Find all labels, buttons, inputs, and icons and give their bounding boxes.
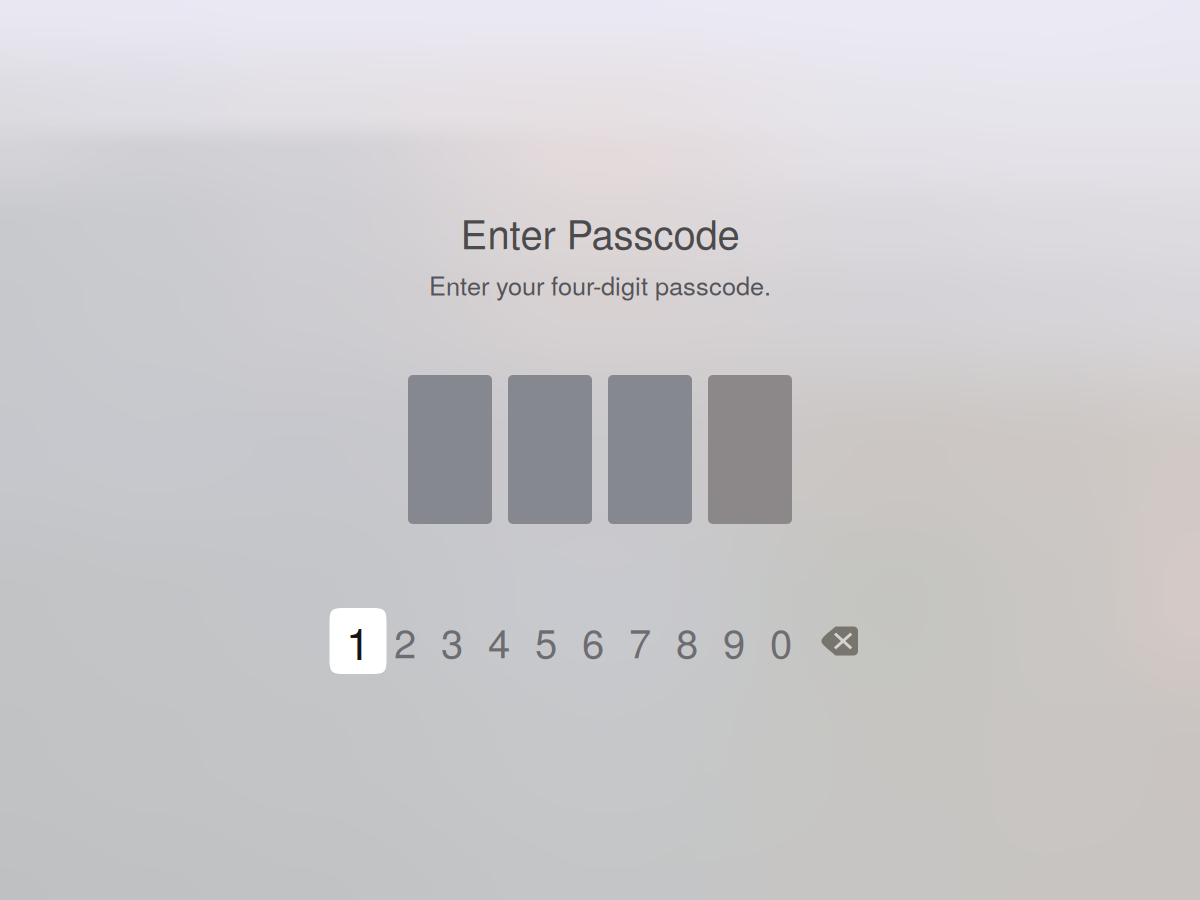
staticText: 8 bbox=[676, 612, 698, 670]
button[interactable]: Delete bbox=[804, 608, 873, 674]
button[interactable]: 1 bbox=[334, 608, 381, 674]
staticText: 7 bbox=[629, 612, 651, 670]
button[interactable]: 2 bbox=[381, 608, 428, 674]
staticText: 2 bbox=[394, 612, 416, 670]
button[interactable]: 8 bbox=[663, 608, 710, 674]
staticText: Enter your four-digit passcode. bbox=[429, 266, 771, 303]
staticText: 3 bbox=[441, 612, 463, 670]
button[interactable]: 9 bbox=[710, 608, 757, 674]
staticText: 6 bbox=[582, 612, 604, 670]
button[interactable]: 4 bbox=[475, 608, 522, 674]
staticText: 5 bbox=[535, 612, 557, 670]
staticText: 1 bbox=[346, 609, 370, 672]
button[interactable]: 7 bbox=[616, 608, 663, 674]
staticText: 4 bbox=[488, 612, 510, 670]
button[interactable]: 5 bbox=[522, 608, 569, 674]
button[interactable]: 6 bbox=[569, 608, 616, 674]
staticText: Enter Passcode bbox=[460, 203, 739, 261]
button[interactable]: 3 bbox=[428, 608, 475, 674]
staticText: 9 bbox=[723, 612, 745, 670]
staticText: 0 bbox=[770, 612, 792, 670]
button[interactable]: 0 bbox=[757, 608, 804, 674]
